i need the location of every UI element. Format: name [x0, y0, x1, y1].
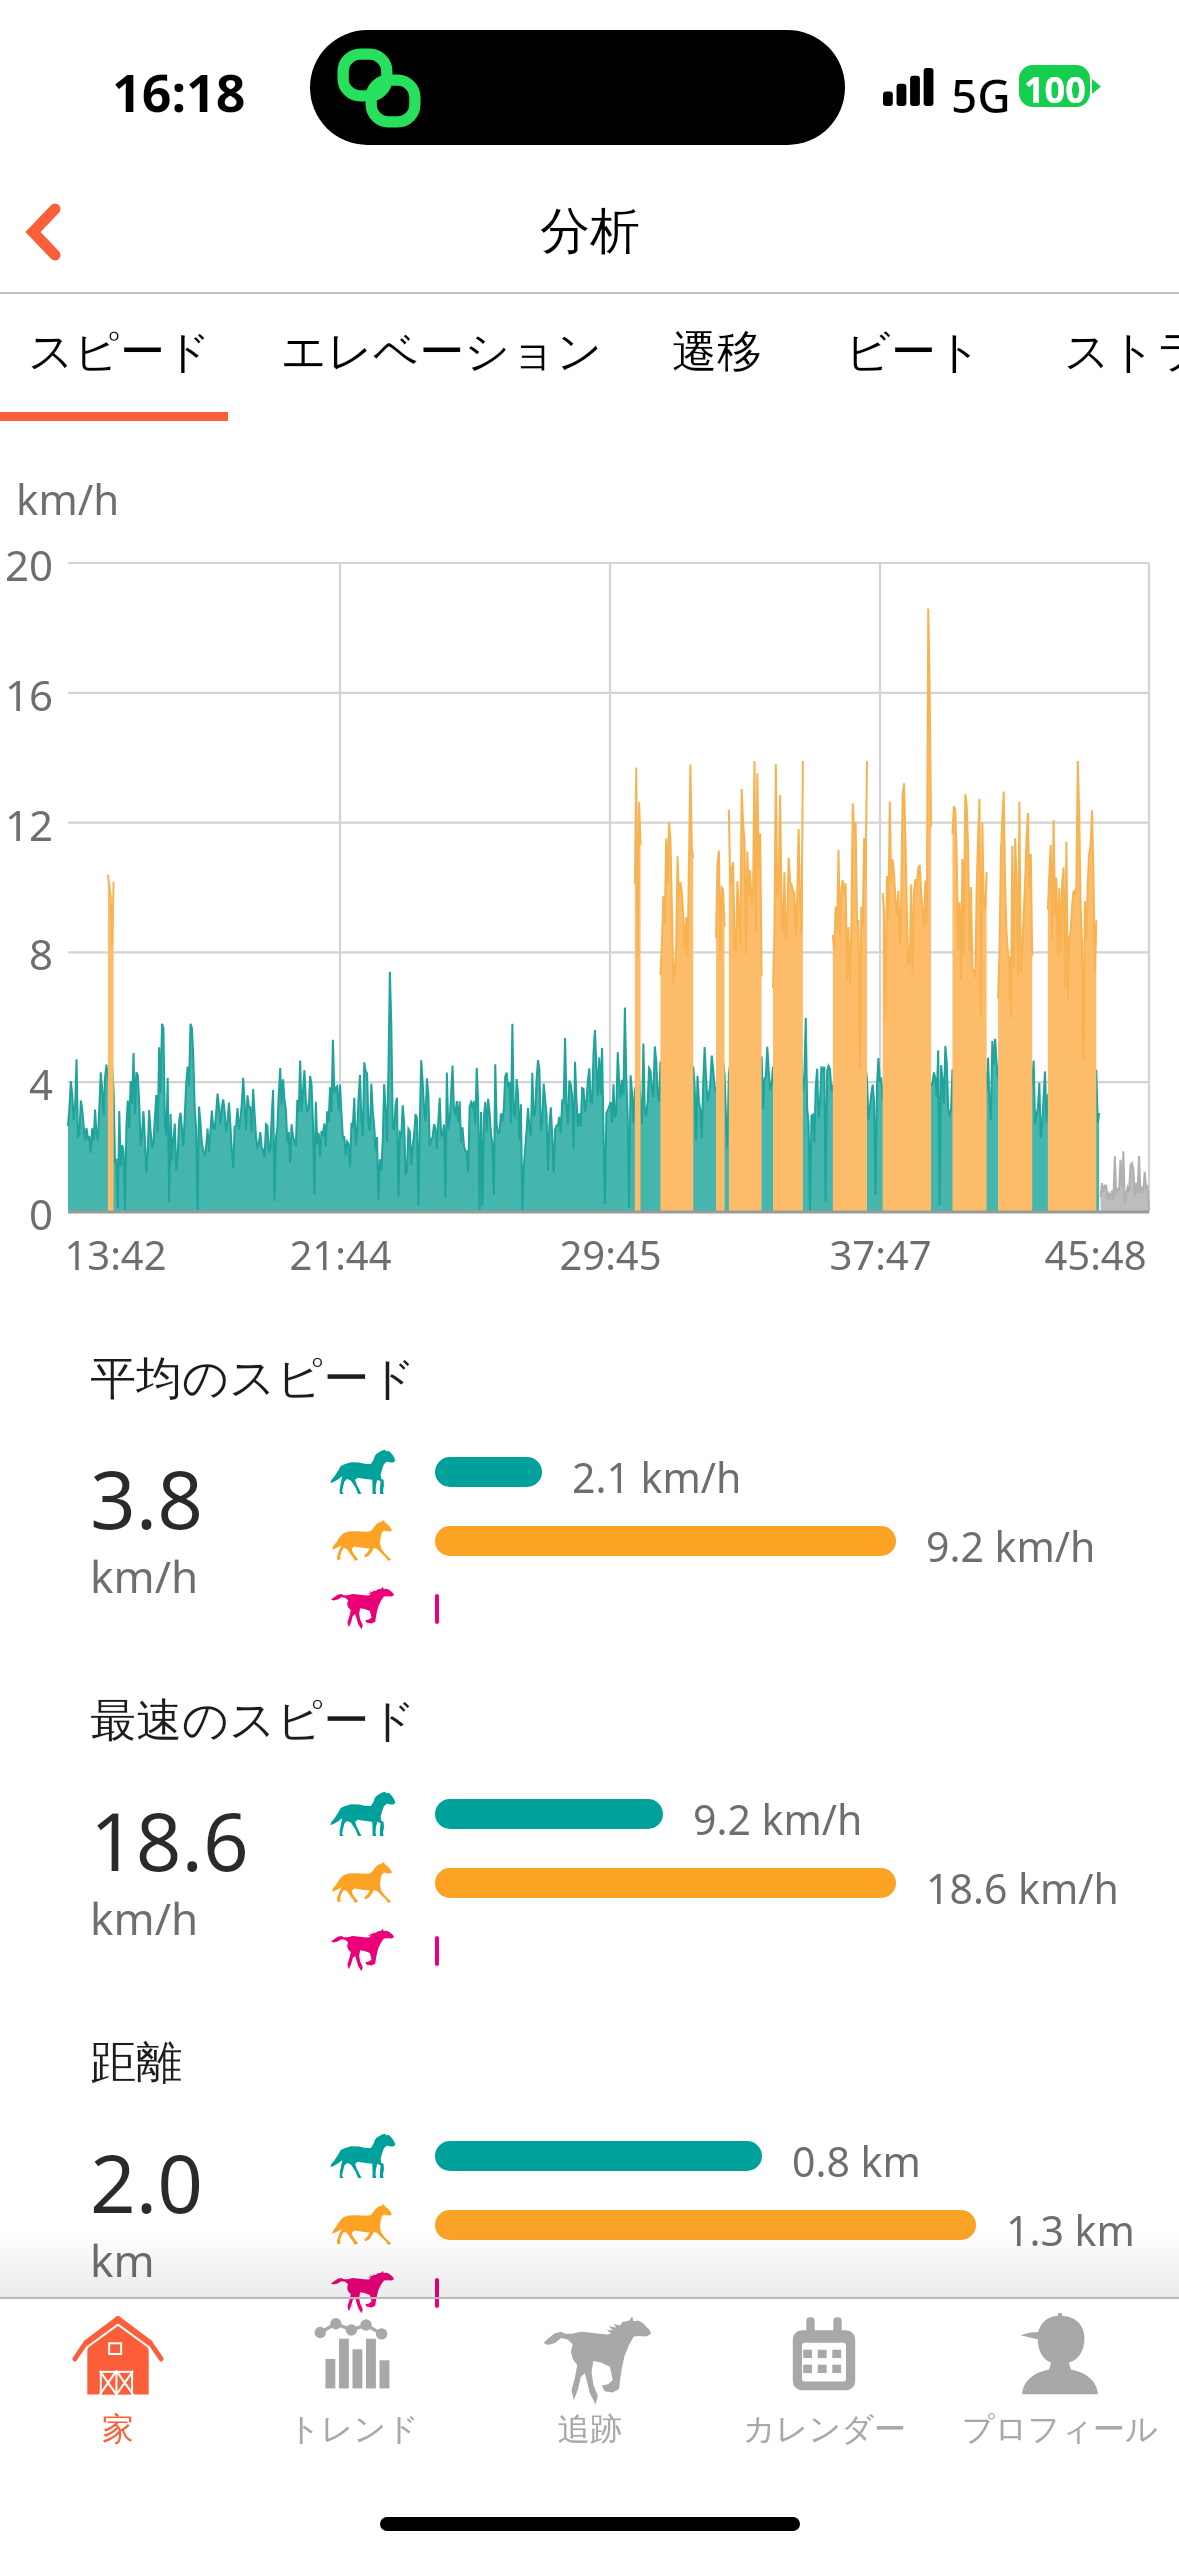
staticText: 1.3 km [1006, 2202, 1135, 2258]
button[interactable]: カレンダー [694, 2311, 954, 2463]
staticText: 0 [29, 1185, 54, 1242]
staticText: 9.2 km/h [926, 1518, 1096, 1574]
button[interactable]: 家 [0, 2311, 248, 2463]
staticText: 16 [5, 666, 54, 723]
staticText: カレンダー [743, 2409, 906, 2449]
staticText: 3.8 [90, 1443, 203, 1552]
staticText: 29:45 [559, 1227, 662, 1281]
staticText: km/h [16, 470, 120, 527]
staticText: ストラ [1064, 324, 1179, 381]
staticText: 4 [29, 1055, 54, 1112]
staticText: 平均のスピード [90, 1350, 417, 1408]
button[interactable]: 追跡 [460, 2311, 720, 2463]
staticText: 2.1 km/h [572, 1449, 742, 1505]
button[interactable]: ストラ [1036, 300, 1179, 404]
staticText: 21:44 [289, 1227, 392, 1281]
button[interactable]: Back [0, 170, 120, 293]
staticText: エレベーション [281, 324, 603, 381]
button[interactable]: スピード [0, 300, 240, 404]
staticText: 8 [29, 925, 54, 982]
staticText: 45:48 [1044, 1227, 1147, 1281]
staticText: 9.2 km/h [693, 1791, 863, 1847]
staticText: km/h [90, 1888, 199, 1948]
button[interactable]: ビート [817, 300, 1011, 404]
button[interactable]: エレベーション [253, 300, 631, 404]
staticText: 12 [5, 796, 54, 853]
staticText: 100 [1024, 65, 1086, 107]
staticText: 37:47 [829, 1227, 932, 1281]
button[interactable]: プロフィール [930, 2311, 1179, 2463]
staticText: 13:42 [64, 1227, 167, 1281]
staticText: 分析 [540, 200, 640, 263]
staticText: km/h [90, 1546, 199, 1606]
staticText: 2.0 [90, 2127, 203, 2236]
staticText: 最速のスピード [90, 1692, 417, 1750]
staticText: プロフィール [962, 2409, 1158, 2449]
staticText: 距離 [90, 2034, 182, 2092]
staticText: km [90, 2230, 155, 2290]
staticText: 遷移 [672, 324, 762, 381]
staticText: 18.6 [90, 1785, 249, 1894]
button[interactable]: 遷移 [644, 300, 790, 404]
staticText: 家 [102, 2409, 134, 2449]
staticText: 5G [951, 64, 1011, 127]
staticText: 0.8 km [792, 2133, 921, 2189]
staticText: 20 [5, 536, 54, 593]
staticText: 16:18 [112, 56, 246, 127]
staticText: 追跡 [558, 2409, 622, 2449]
button[interactable]: トレンド [223, 2311, 483, 2463]
staticText: トレンド [288, 2409, 419, 2449]
staticText: スピード [28, 324, 212, 381]
staticText: ビート [845, 324, 983, 381]
staticText: 18.6 km/h [926, 1860, 1119, 1916]
